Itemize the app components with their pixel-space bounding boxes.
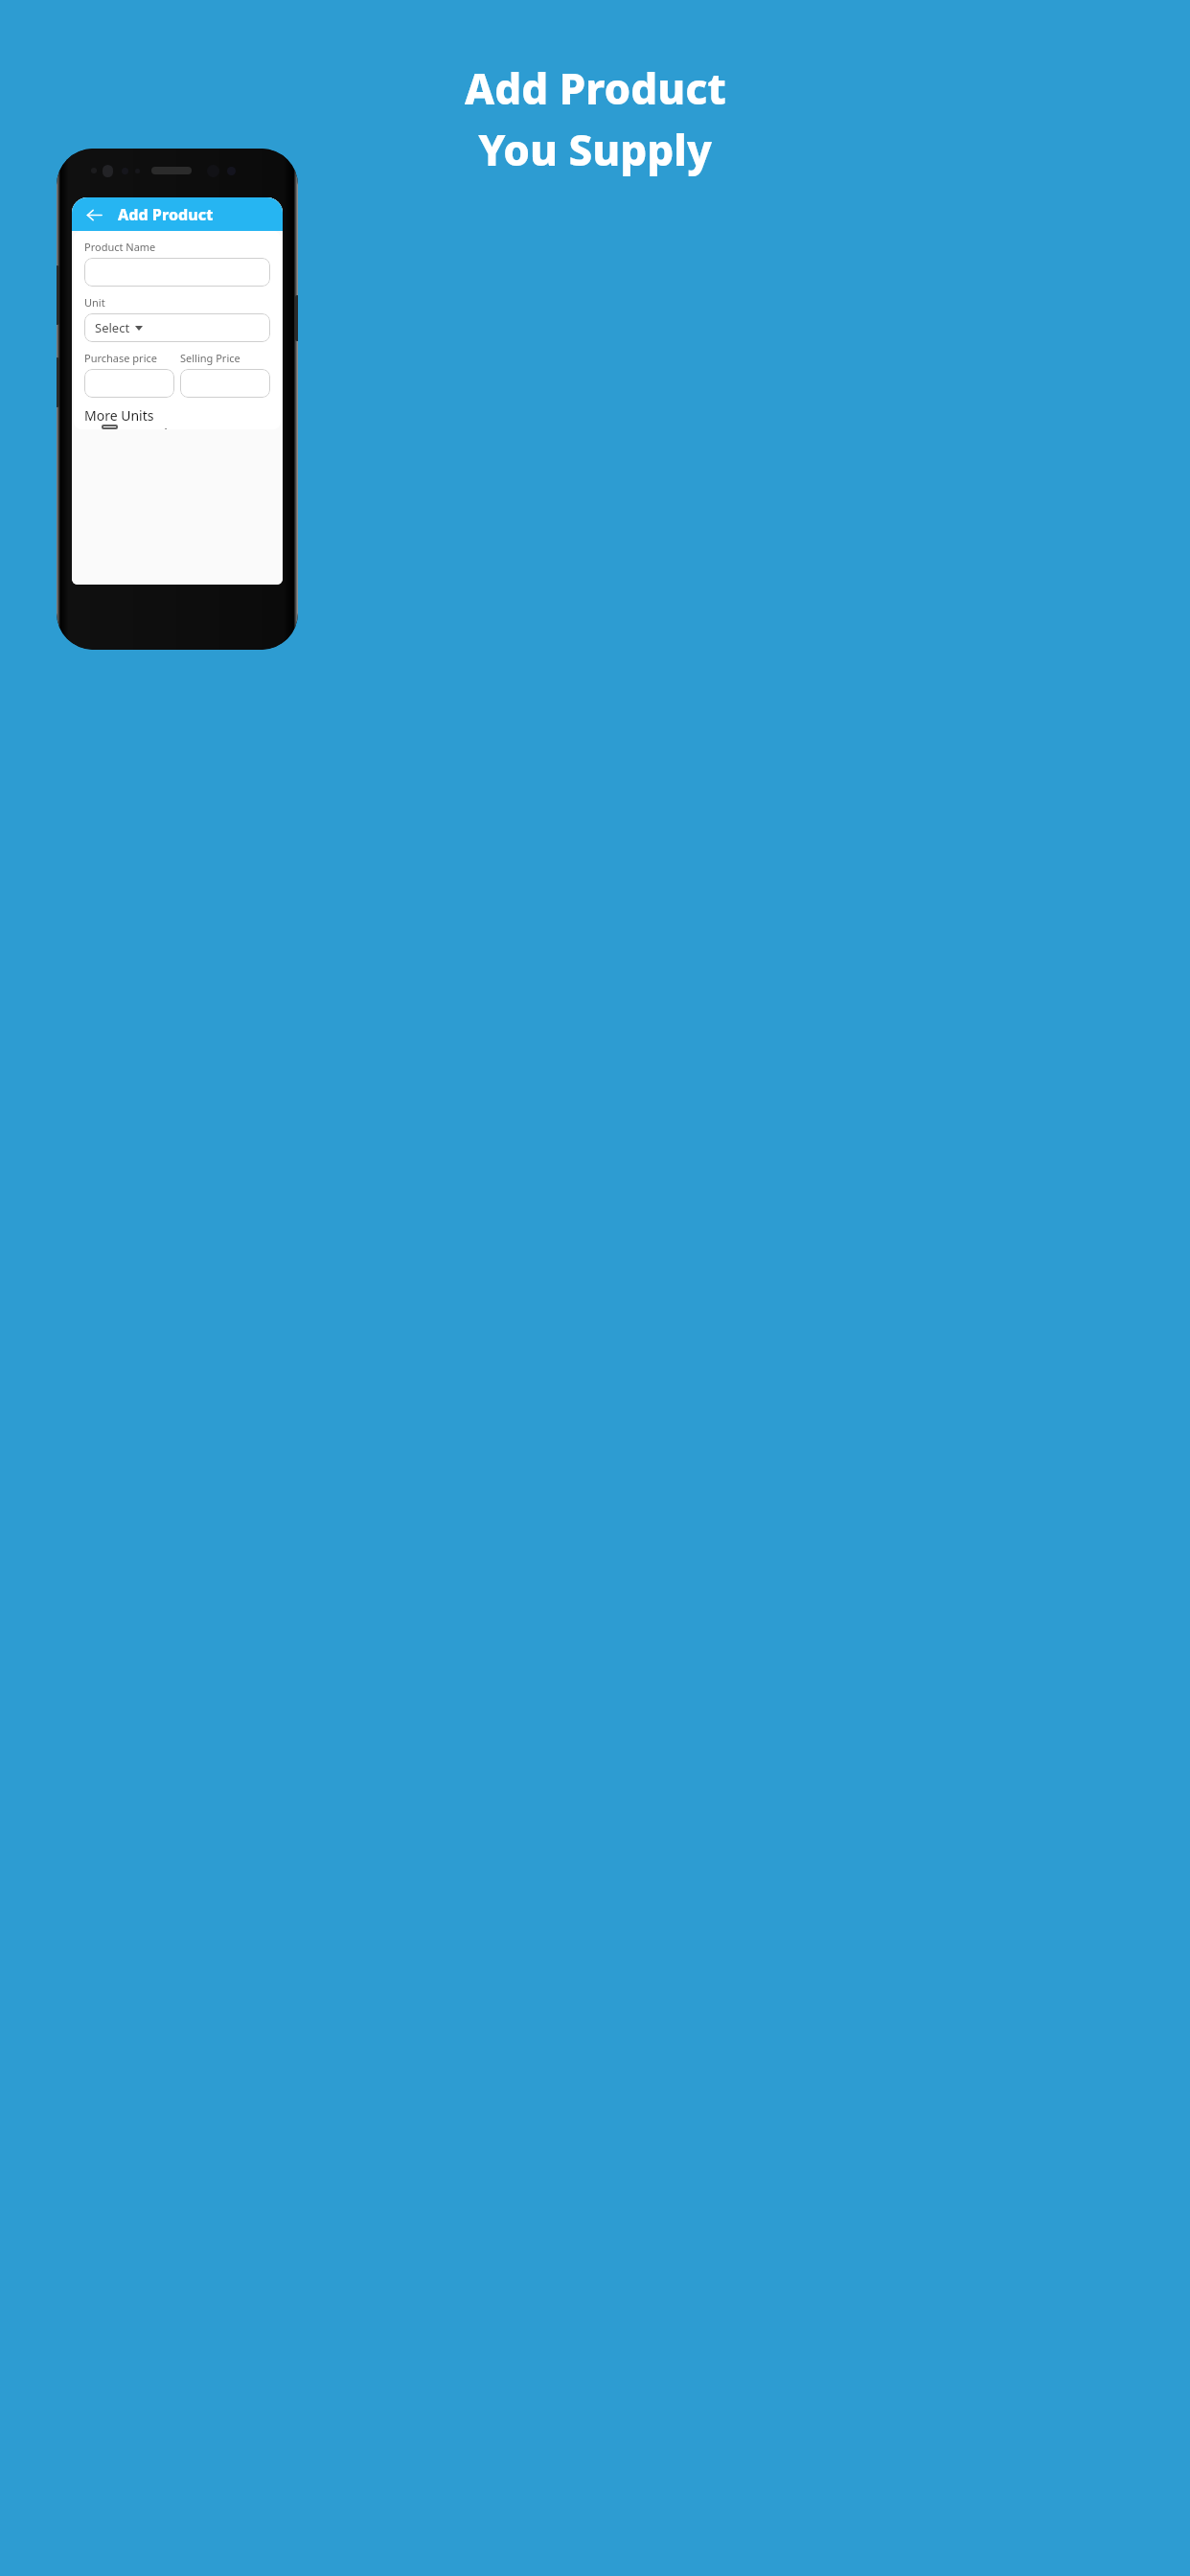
button[interactable] <box>180 369 270 398</box>
staticText: Unit <box>84 295 105 310</box>
staticText: Selling Price <box>180 351 240 365</box>
button[interactable]: Select <box>84 313 270 342</box>
staticText: You Supply <box>478 121 712 178</box>
staticText: Select <box>95 319 130 336</box>
button[interactable] <box>84 369 174 398</box>
button[interactable] <box>84 258 270 287</box>
staticText: Add Product <box>118 204 214 225</box>
staticText: More Units <box>84 406 154 425</box>
staticText: Product Name <box>84 240 156 254</box>
staticText: Purchase price <box>84 351 157 365</box>
button[interactable]: Back <box>81 202 106 227</box>
staticText: Add Product <box>465 59 726 117</box>
button[interactable]: Pouch <box>84 425 270 429</box>
